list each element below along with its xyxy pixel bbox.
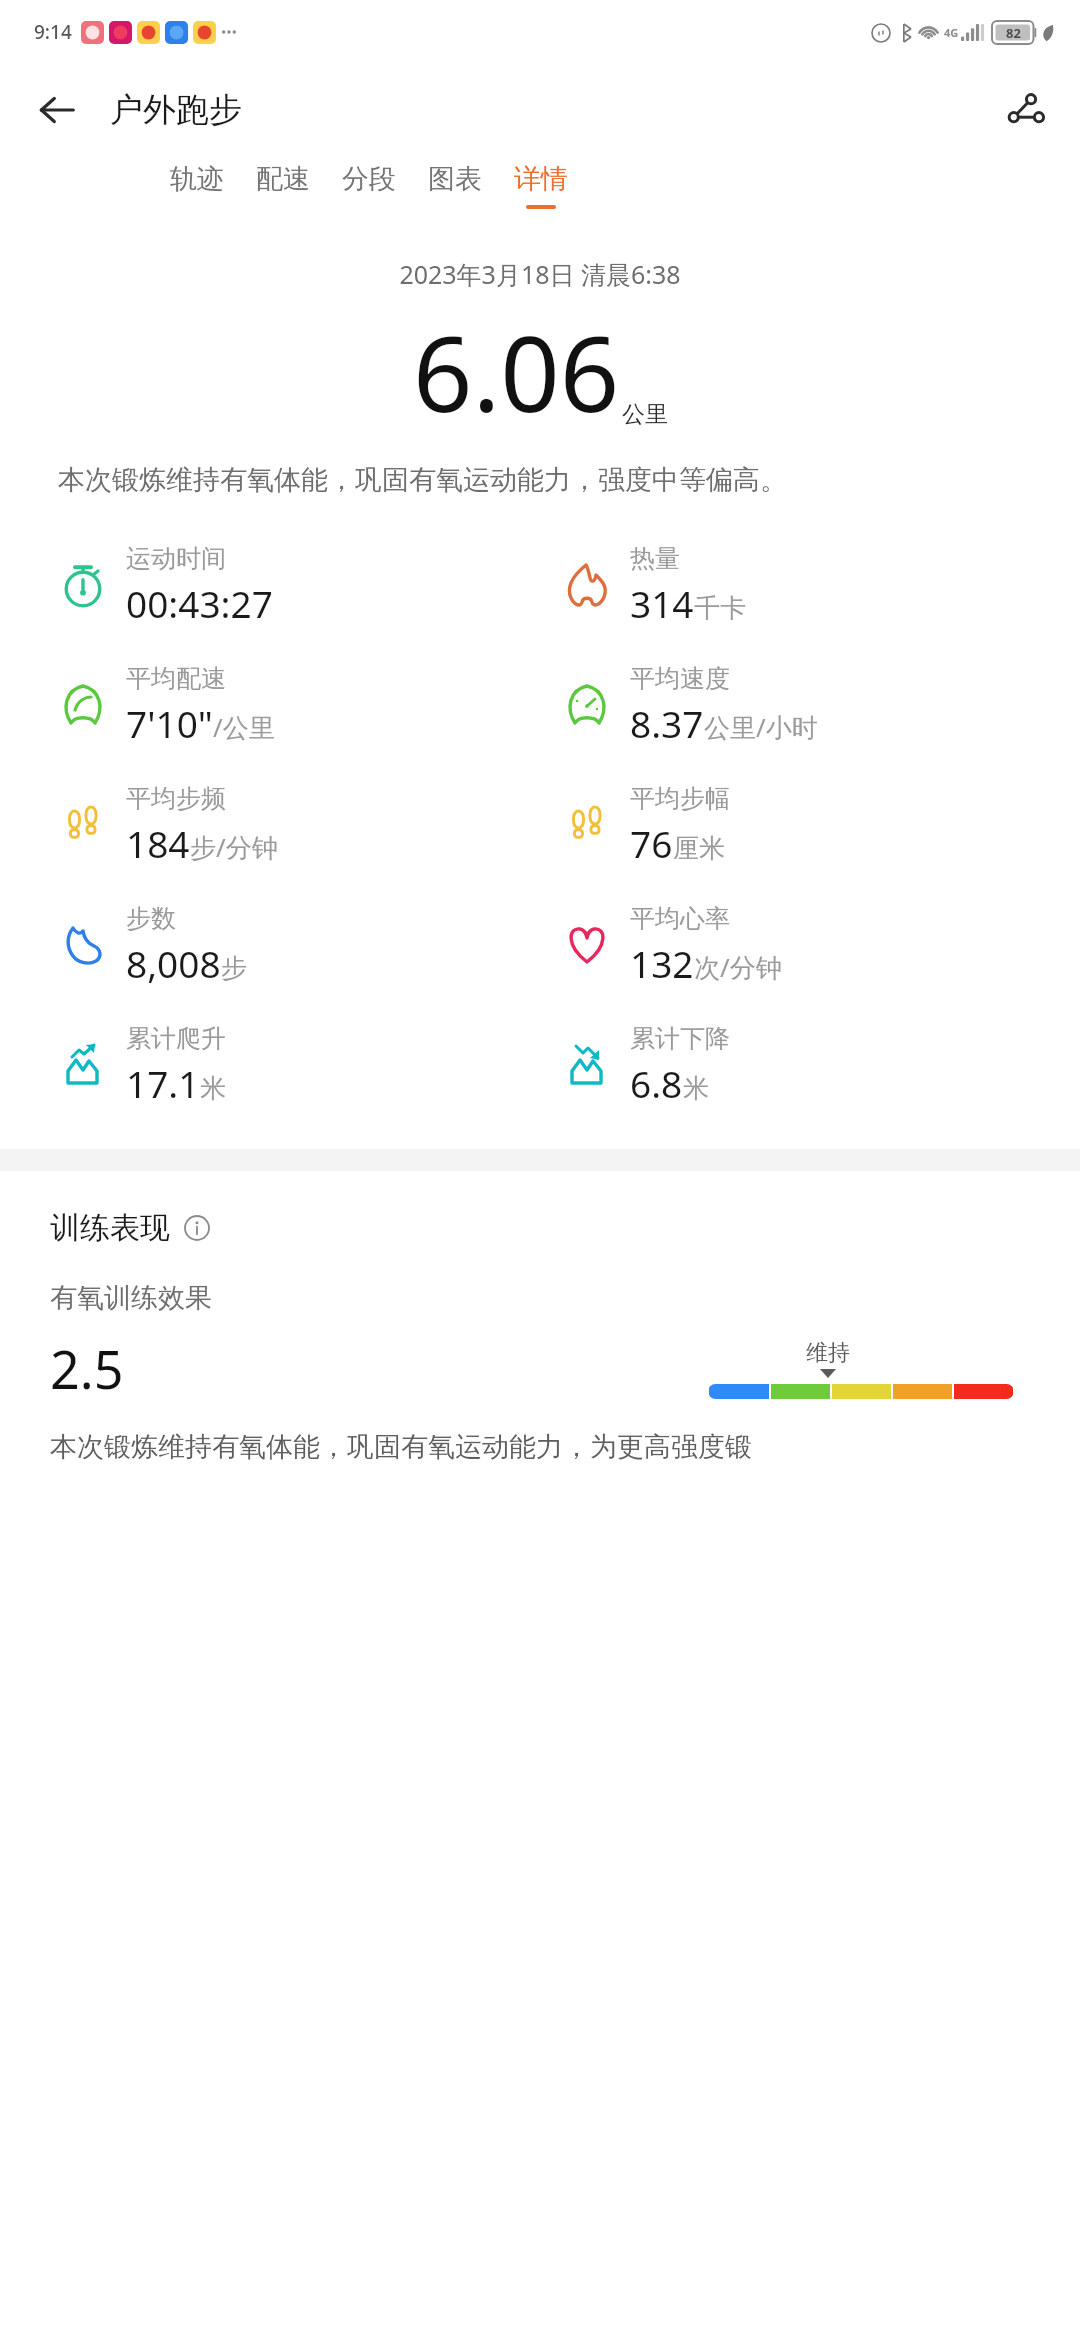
staticText: 平均步幅 xyxy=(630,783,730,814)
staticText: 次/分钟 xyxy=(694,949,782,985)
staticText: 步数 xyxy=(126,903,176,934)
staticText: 平均步频 xyxy=(126,783,226,814)
button[interactable]: Back xyxy=(30,83,84,137)
staticText: 公里/小时 xyxy=(704,709,818,745)
staticText: 8,008 xyxy=(126,938,221,988)
button[interactable]: 热量 xyxy=(560,525,1080,645)
staticText: 维持 xyxy=(806,1339,850,1367)
staticText: 公里 xyxy=(622,400,668,429)
button[interactable]: 累计下降 xyxy=(560,1005,1080,1125)
staticText: 2.5 xyxy=(50,1333,124,1404)
staticText: 运动时间 xyxy=(126,543,226,574)
staticText: /公里 xyxy=(213,709,275,745)
staticText: 图表 xyxy=(428,162,482,196)
staticText: 详情 xyxy=(514,162,568,196)
button[interactable]: 平均步频 xyxy=(56,765,540,885)
staticText: 314 xyxy=(630,578,694,628)
staticText: 76 xyxy=(630,818,673,868)
button[interactable]: 分段 xyxy=(342,156,396,215)
staticText: 本次锻炼维持有氧体能，巩固有氧运动能力，为更高强度锻 xyxy=(50,1430,752,1464)
staticText: 4G xyxy=(944,25,959,40)
staticText: 6.06 xyxy=(413,301,620,443)
button[interactable]: 运动时间 xyxy=(56,525,540,645)
staticText: 厘米 xyxy=(673,832,725,865)
button[interactable]: 平均心率 xyxy=(560,885,1080,1005)
staticText: 千卡 xyxy=(694,592,746,625)
staticText: 米 xyxy=(200,1072,226,1105)
button[interactable]: 轨迹 xyxy=(170,156,224,215)
staticText: 平均心率 xyxy=(630,903,730,934)
staticText: 平均速度 xyxy=(630,663,730,694)
staticText: 训练表现 xyxy=(50,1209,170,1247)
button[interactable]: 平均配速 xyxy=(56,645,540,765)
staticText: 分段 xyxy=(342,162,396,196)
staticText: 82 xyxy=(1006,24,1021,42)
other: Info xyxy=(184,1215,210,1241)
staticText: 8.37 xyxy=(630,698,704,748)
staticText: 热量 xyxy=(630,543,680,574)
staticText: 步 xyxy=(221,952,247,985)
staticText: 2023年3月18日 清晨6:38 xyxy=(0,257,1080,291)
button[interactable]: 详情 xyxy=(514,156,568,215)
staticText: 6.8 xyxy=(630,1058,683,1108)
staticText: 配速 xyxy=(256,162,310,196)
button[interactable]: 训练表现 xyxy=(50,1209,210,1247)
button[interactable]: 累计爬升 xyxy=(56,1005,540,1125)
staticText: 平均配速 xyxy=(126,663,226,694)
staticText: 户外跑步 xyxy=(110,89,242,131)
button[interactable]: 平均速度 xyxy=(560,645,1080,765)
button[interactable]: 步数 xyxy=(56,885,540,1005)
button[interactable]: 配速 xyxy=(256,156,310,215)
staticText: 184 xyxy=(126,818,190,868)
button[interactable]: Share xyxy=(998,82,1054,138)
staticText: 132 xyxy=(630,938,694,988)
staticText: 步/分钟 xyxy=(190,829,278,865)
staticText: 本次锻炼维持有氧体能，巩固有氧运动能力，强度中等偏高。 xyxy=(58,463,1022,497)
staticText: 00:43:27 xyxy=(126,578,273,628)
staticText: 轨迹 xyxy=(170,162,224,196)
button[interactable]: 平均步幅 xyxy=(560,765,1080,885)
staticText: 7'10" xyxy=(126,698,213,748)
staticText: 米 xyxy=(683,1072,709,1105)
staticText: 累计下降 xyxy=(630,1023,730,1054)
staticText: 17.1 xyxy=(126,1058,200,1108)
staticText: 有氧训练效果 xyxy=(50,1281,212,1315)
staticText: 累计爬升 xyxy=(126,1023,226,1054)
button[interactable]: 图表 xyxy=(428,156,482,215)
staticText: 9:14 xyxy=(34,19,72,45)
